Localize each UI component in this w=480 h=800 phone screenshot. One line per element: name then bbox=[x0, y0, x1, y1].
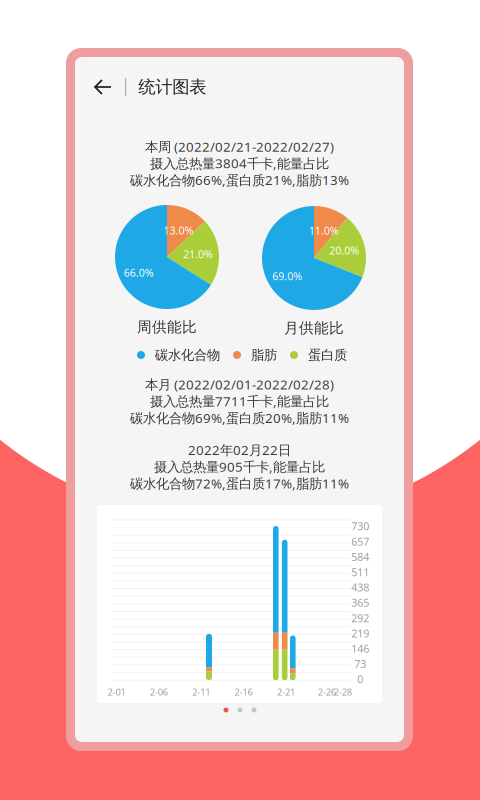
staticText: 0 bbox=[357, 672, 363, 686]
staticText: 365 bbox=[351, 596, 369, 610]
staticText: 2-28 bbox=[334, 686, 352, 698]
staticText: 摄入总热量905千卡,能量占比 bbox=[154, 458, 325, 475]
staticText: 2-06 bbox=[150, 686, 168, 698]
staticText: 2-11 bbox=[192, 686, 210, 698]
staticText: 碳水化合物 bbox=[155, 347, 220, 363]
staticText: 2-21 bbox=[277, 686, 295, 698]
staticText: 511 bbox=[351, 565, 369, 579]
staticText: 584 bbox=[351, 550, 369, 564]
staticText: 摄入总热量7711千卡,能量占比 bbox=[150, 392, 329, 410]
staticText: 摄入总热量3804千卡,能量占比 bbox=[150, 154, 329, 172]
staticText: 66.0% bbox=[124, 265, 154, 280]
staticText: 2-26 bbox=[318, 686, 336, 698]
staticText: 69.0% bbox=[272, 269, 302, 283]
staticText: 657 bbox=[351, 534, 369, 549]
staticText: 脂肪 bbox=[251, 347, 277, 363]
button[interactable]: Back bbox=[75, 65, 125, 109]
staticText: 碳水化合物69%,蛋白质20%,脂肪11% bbox=[130, 409, 349, 427]
staticText: 本月 (2022/02/01-2022/02/28) bbox=[145, 375, 334, 393]
staticText: 11.0% bbox=[309, 223, 339, 238]
staticText: 月供能比 bbox=[284, 319, 344, 337]
staticText: 本周 (2022/02/21-2022/02/27) bbox=[145, 138, 334, 155]
staticText: 219 bbox=[351, 626, 369, 640]
staticText: 20.0% bbox=[329, 243, 359, 257]
staticText: 周供能比 bbox=[137, 318, 197, 336]
staticText: 438 bbox=[351, 580, 369, 594]
staticText: 13.0% bbox=[164, 223, 194, 237]
staticText: 2-01 bbox=[107, 686, 125, 698]
staticText: 碳水化合物72%,蛋白质17%,脂肪11% bbox=[130, 474, 349, 492]
staticText: 146 bbox=[351, 641, 369, 656]
staticText: 292 bbox=[351, 611, 369, 625]
staticText: 蛋白质 bbox=[308, 347, 347, 363]
staticText: 2022年02月22日 bbox=[188, 441, 291, 459]
staticText: 730 bbox=[351, 519, 369, 533]
staticText: 碳水化合物66%,蛋白质21%,脂肪13% bbox=[130, 171, 349, 189]
staticText: 21.0% bbox=[183, 247, 213, 261]
staticText: 统计图表 bbox=[138, 76, 206, 98]
staticText: 73 bbox=[354, 657, 366, 671]
staticText: 2-16 bbox=[235, 686, 253, 698]
